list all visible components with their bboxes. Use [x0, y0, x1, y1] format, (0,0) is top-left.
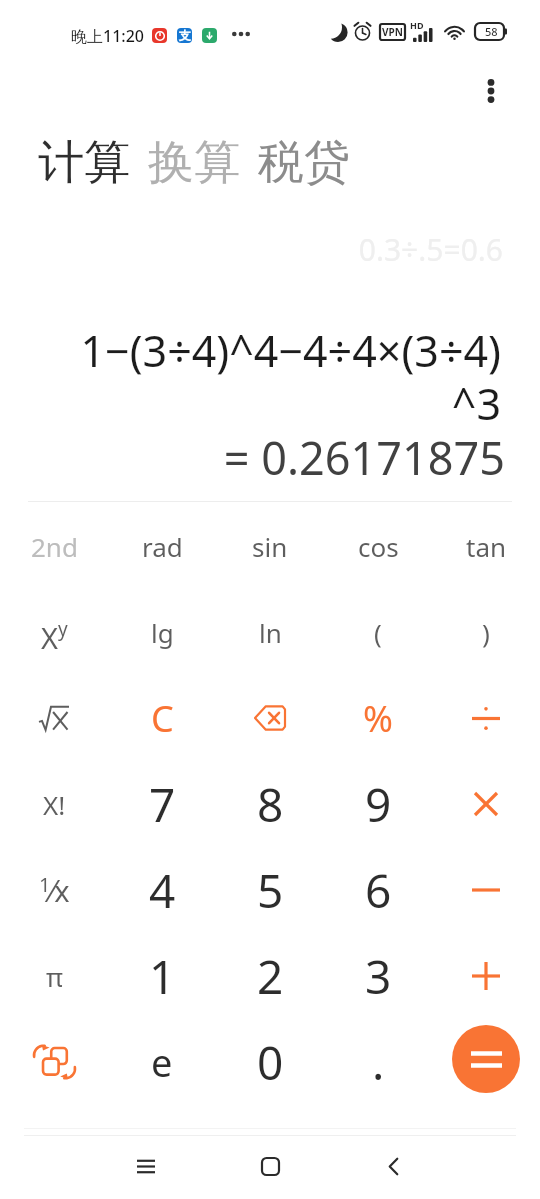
button[interactable]: e	[108, 1019, 216, 1105]
button[interactable]: 5	[216, 847, 324, 933]
button[interactable]: cos	[324, 503, 432, 589]
button[interactable]: 换算	[148, 134, 240, 192]
staticText: Xy	[41, 616, 68, 657]
staticText: .	[372, 1031, 385, 1094]
staticText: 8	[257, 773, 284, 836]
staticText: e	[151, 1036, 173, 1088]
button[interactable]: .	[324, 1019, 432, 1105]
button[interactable]: )	[432, 589, 540, 675]
button[interactable]: 0	[216, 1019, 324, 1105]
other: Equals	[452, 1025, 520, 1093]
staticText: (	[374, 615, 382, 650]
button[interactable]: 1	[108, 933, 216, 1019]
button[interactable]: sin	[216, 503, 324, 589]
staticText: π	[46, 959, 63, 994]
button[interactable]: 6	[324, 847, 432, 933]
button[interactable]: 3	[324, 933, 432, 1019]
staticText: 1⁄x	[39, 870, 70, 911]
button[interactable]: Divide	[432, 675, 540, 761]
button[interactable]: 1⁄x	[0, 847, 108, 933]
button[interactable]: X!	[0, 761, 108, 847]
button[interactable]: 7	[108, 761, 216, 847]
staticText: 7	[149, 773, 176, 836]
other: Divide	[472, 707, 500, 730]
button[interactable]: %	[324, 675, 432, 761]
button[interactable]: rad	[108, 503, 216, 589]
button[interactable]: 8	[216, 761, 324, 847]
button[interactable]: ln	[216, 589, 324, 675]
staticText: sin	[252, 529, 288, 564]
button[interactable]: Multiply	[432, 761, 540, 847]
staticText: HD	[410, 19, 424, 31]
staticText: 0	[257, 1031, 284, 1094]
staticText: 2	[257, 945, 284, 1008]
button[interactable]: Recent apps	[116, 1136, 176, 1196]
button[interactable]: Square root	[0, 675, 108, 761]
staticText: 0.3÷.5=0.6	[0, 229, 503, 270]
button[interactable]: 2	[216, 933, 324, 1019]
staticText: 1	[149, 945, 176, 1008]
other: Backspace	[255, 705, 285, 731]
staticText: X!	[43, 787, 66, 822]
staticText: %	[363, 694, 393, 743]
staticText: 2nd	[31, 529, 78, 564]
staticText: lg	[151, 615, 174, 650]
button[interactable]: Xy	[0, 589, 108, 675]
button[interactable]: 计算	[38, 134, 130, 192]
staticText: 晚上11:20	[71, 25, 144, 47]
staticText: ln	[259, 615, 282, 650]
button[interactable]: C	[108, 675, 216, 761]
button[interactable]: 4	[108, 847, 216, 933]
button[interactable]: 税贷	[258, 134, 350, 192]
staticText: 6	[365, 859, 392, 922]
staticText: 税贷	[258, 134, 350, 192]
staticText: cos	[358, 529, 399, 564]
staticText: 1−(3÷4)^4−4÷4×(3÷4) ^3	[34, 321, 501, 432]
staticText: 计算	[38, 134, 130, 192]
button[interactable]: Back	[363, 1136, 423, 1196]
staticText: rad	[142, 529, 183, 564]
staticText: )	[482, 615, 490, 650]
staticText: tan	[466, 529, 507, 564]
staticText: 3	[365, 945, 392, 1008]
button[interactable]: Subtract	[432, 847, 540, 933]
button[interactable]: 9	[324, 761, 432, 847]
other: Square root	[39, 706, 69, 730]
button[interactable]: tan	[432, 503, 540, 589]
button[interactable]: (	[324, 589, 432, 675]
other: Subtract	[472, 888, 500, 892]
staticText: C	[151, 694, 174, 743]
button[interactable]: Add	[432, 933, 540, 1019]
button[interactable]: More options	[470, 70, 512, 112]
staticText: 58	[485, 24, 498, 39]
staticText: VPN	[382, 25, 403, 39]
other: Convert units	[34, 1045, 75, 1079]
staticText: 5	[257, 859, 284, 922]
button[interactable]: Convert units	[0, 1019, 108, 1105]
staticText: 换算	[148, 134, 240, 192]
staticText: 4	[149, 859, 176, 922]
other: Add	[472, 962, 500, 990]
staticText: = 0.26171875	[0, 427, 505, 488]
button[interactable]: 2nd	[0, 503, 108, 589]
staticText: 9	[365, 773, 392, 836]
button[interactable]: Equals	[432, 1019, 540, 1105]
button[interactable]: Backspace	[216, 675, 324, 761]
other: Multiply	[475, 793, 497, 815]
staticText: 支	[179, 28, 191, 43]
button[interactable]: lg	[108, 589, 216, 675]
button[interactable]: Home	[240, 1136, 300, 1196]
button[interactable]: π	[0, 933, 108, 1019]
